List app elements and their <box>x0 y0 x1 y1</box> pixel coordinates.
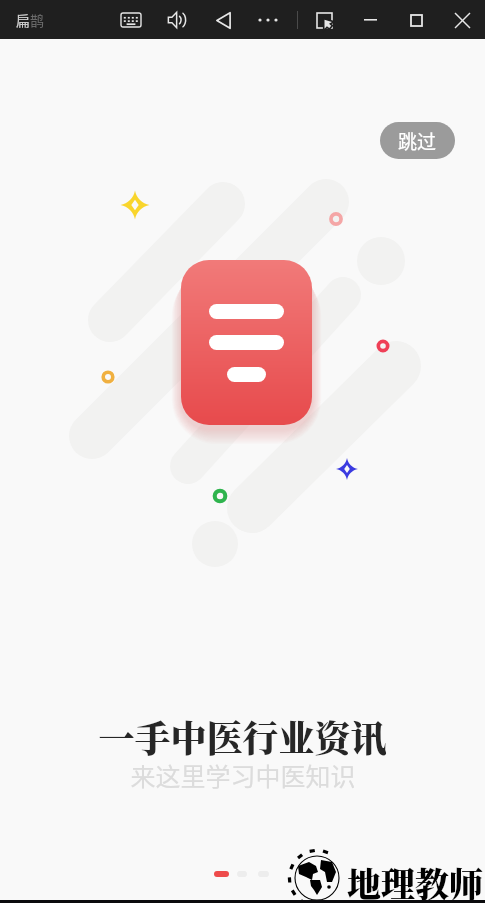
button[interactable]: Minimize <box>355 5 385 35</box>
button[interactable]: Volume <box>162 5 192 35</box>
button[interactable]: More <box>253 5 283 35</box>
button[interactable]: Screenshot <box>309 5 339 35</box>
staticText: 鹊 <box>30 10 44 30</box>
staticText: 扁 <box>16 10 30 30</box>
staticText: 来这里学习中医知识 <box>130 757 356 793</box>
staticText: 地理教师 <box>347 858 483 903</box>
button[interactable]: Back <box>208 5 238 35</box>
button[interactable]: 跳过 <box>380 122 455 159</box>
button[interactable]: Maximize <box>401 5 431 35</box>
button[interactable]: Close <box>447 5 477 35</box>
staticText: 一手中医行业资讯 <box>98 711 387 763</box>
staticText: 跳过 <box>398 127 437 155</box>
button[interactable]: Keyboard <box>116 5 146 35</box>
